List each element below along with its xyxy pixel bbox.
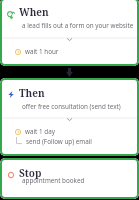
other: Action xyxy=(8,91,14,98)
button[interactable]: send (Follow up) email xyxy=(15,137,139,146)
other: Trigger xyxy=(7,11,15,19)
staticText: offer free consultation (send text) xyxy=(22,102,136,111)
staticText: Then xyxy=(19,86,45,100)
button[interactable]: Trigger xyxy=(0,0,139,66)
staticText: wait 1 day xyxy=(25,127,55,136)
staticText: send (Follow up) email xyxy=(26,137,92,146)
staticText: appointment booked xyxy=(22,176,136,185)
other: Stop xyxy=(8,172,14,178)
button[interactable]: Stop xyxy=(0,158,139,199)
other: Flow connector xyxy=(66,68,73,77)
button[interactable]: wait 1 hour xyxy=(15,47,139,56)
button[interactable]: wait 1 day xyxy=(15,127,139,136)
button[interactable]: Action xyxy=(0,78,139,156)
staticText: a lead fills out a form on your website xyxy=(22,21,136,30)
staticText: wait 1 hour xyxy=(25,47,59,56)
staticText: When xyxy=(19,5,49,19)
staticText: Stop xyxy=(19,166,42,180)
